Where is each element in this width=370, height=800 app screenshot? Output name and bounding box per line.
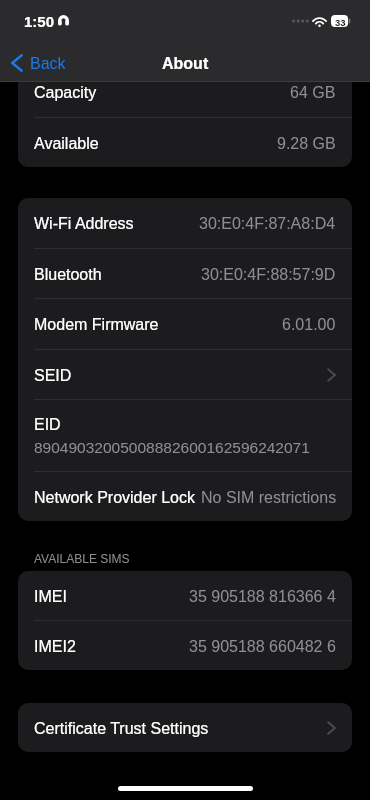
- button[interactable]: Available: [18, 118, 352, 167]
- staticText: Capacity: [34, 84, 97, 102]
- staticText: IMEI2: [34, 638, 76, 656]
- staticText: AVAILABLE SIMS: [34, 552, 130, 565]
- button[interactable]: Modem Firmware: [18, 299, 352, 350]
- staticText: 30:E0:4F:88:57:9D: [201, 266, 336, 284]
- staticText: 89049032005008882600162596242071: [34, 439, 310, 456]
- button[interactable]: IMEI: [18, 571, 352, 621]
- button[interactable]: Wi-Fi Address: [18, 198, 352, 249]
- button[interactable]: IMEI2: [18, 621, 352, 670]
- staticText: 6.01.00: [282, 316, 336, 334]
- button[interactable]: SEID: [18, 350, 352, 400]
- button[interactable]: EID: [18, 400, 352, 472]
- staticText: 1:50: [24, 13, 55, 30]
- staticText: Wi-Fi Address: [34, 215, 134, 233]
- staticText: 64 GB: [290, 84, 336, 102]
- staticText: 35 905188 660482 6: [189, 638, 336, 656]
- staticText: No SIM restrictions: [201, 489, 336, 507]
- staticText: 30:E0:4F:87:A8:D4: [199, 215, 336, 233]
- staticText: Certificate Trust Settings: [34, 720, 209, 738]
- button[interactable]: Back: [0, 48, 76, 78]
- staticText: Available: [34, 135, 99, 153]
- button[interactable]: Bluetooth: [18, 249, 352, 299]
- button[interactable]: Capacity: [18, 67, 352, 118]
- staticText: 9.28 GB: [277, 135, 336, 153]
- staticText: Back: [30, 55, 66, 73]
- staticText: IMEI: [34, 588, 67, 606]
- staticText: 35 905188 816366 4: [189, 588, 336, 606]
- staticText: About: [162, 55, 209, 73]
- staticText: EID: [34, 416, 61, 434]
- button[interactable]: Network Provider Lock: [18, 472, 352, 521]
- staticText: Modem Firmware: [34, 316, 159, 334]
- staticText: Network Provider Lock: [34, 489, 195, 507]
- button[interactable]: Certificate Trust Settings: [18, 703, 352, 752]
- staticText: Bluetooth: [34, 266, 102, 284]
- staticText: SEID: [34, 367, 72, 385]
- staticText: 33: [335, 17, 346, 28]
